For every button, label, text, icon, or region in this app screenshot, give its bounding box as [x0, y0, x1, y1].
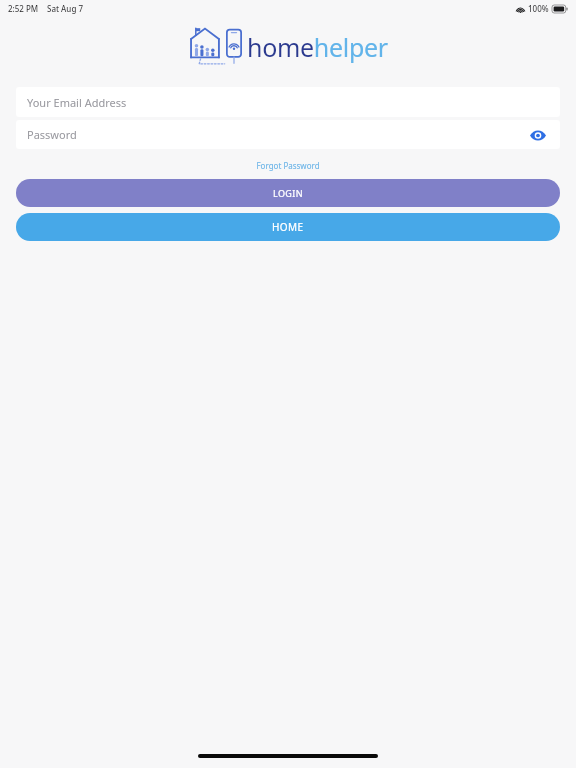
staticText: Forgot Password: [256, 160, 320, 171]
staticText: 2:52 PM: [8, 3, 39, 14]
staticText: 100%: [528, 3, 549, 14]
staticText: homehelper: [247, 30, 388, 64]
staticText: HOME: [272, 220, 304, 234]
button[interactable]: Forgot Password: [252, 159, 324, 172]
staticText: Sat Aug 7: [47, 3, 83, 14]
button[interactable]: Password: [16, 120, 560, 149]
staticText: Your Email Address: [27, 95, 127, 110]
button[interactable]: LOGIN: [16, 179, 560, 207]
button[interactable]: Show password: [526, 123, 550, 147]
button[interactable]: HOME: [16, 213, 560, 241]
staticText: LOGIN: [273, 187, 304, 199]
button[interactable]: Your Email Address: [16, 87, 560, 117]
staticText: Password: [27, 127, 77, 142]
